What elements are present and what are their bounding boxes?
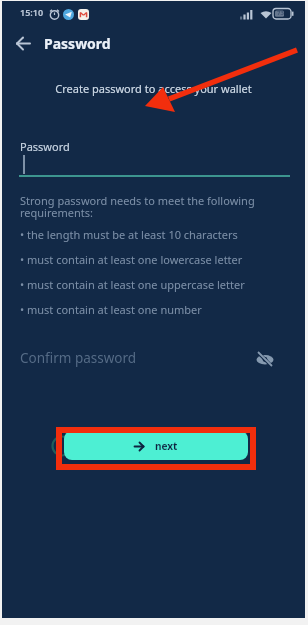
staticText: • must contain at least one uppercase le… <box>20 277 245 292</box>
staticText: 73 <box>277 9 284 17</box>
staticText: Password <box>20 139 70 154</box>
staticText: • must contain at least one lowercase le… <box>20 252 243 267</box>
button[interactable]: next <box>64 431 248 460</box>
staticText: Confirm password <box>20 349 137 367</box>
button[interactable] <box>16 36 31 51</box>
button[interactable] <box>255 351 275 368</box>
staticText: next <box>155 439 178 453</box>
staticText: 15:10 <box>20 6 44 18</box>
staticText: • must contain at least one number <box>20 302 202 317</box>
staticText: Create password to access your wallet <box>2 81 305 96</box>
staticText: Password <box>44 34 111 53</box>
staticText: Strong password needs to meet the follow… <box>20 193 255 220</box>
staticText: • the length must be at least 10 charact… <box>20 227 238 242</box>
